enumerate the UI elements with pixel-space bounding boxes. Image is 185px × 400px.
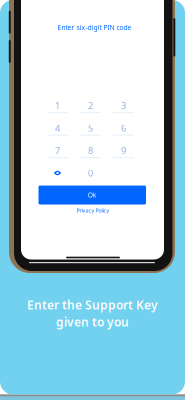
button[interactable]: 3: [113, 99, 134, 121]
button[interactable]: 0: [80, 166, 101, 180]
button[interactable]: 7: [47, 144, 68, 166]
staticText: Enter six-digit PIN code: [57, 23, 131, 32]
button[interactable]: Privacy Policy: [76, 207, 109, 214]
staticText: 6: [121, 122, 126, 134]
staticText: 1: [55, 99, 60, 112]
button[interactable]: 9: [113, 144, 134, 166]
button[interactable]: 2: [80, 99, 101, 121]
staticText: Enter the Support Key: [27, 297, 158, 313]
staticText: 4: [55, 122, 60, 134]
button[interactable]: 5: [80, 121, 101, 144]
staticText: 2: [88, 99, 93, 112]
button[interactable]: 6: [113, 121, 134, 144]
staticText: 3: [121, 99, 126, 112]
staticText: 8: [88, 144, 93, 157]
staticText: 0: [88, 167, 93, 179]
button[interactable]: 8: [80, 144, 101, 166]
staticText: 5: [88, 122, 93, 134]
staticText: 9: [121, 144, 126, 157]
staticText: Privacy Policy: [76, 207, 109, 214]
staticText: 7: [55, 144, 60, 157]
button[interactable]: 4: [47, 121, 68, 144]
staticText: given to you: [56, 314, 129, 330]
button[interactable]: Ok: [38, 185, 146, 204]
button[interactable]: Show PIN: [47, 166, 68, 180]
staticText: Ok: [88, 191, 97, 199]
button[interactable]: 1: [47, 99, 68, 121]
